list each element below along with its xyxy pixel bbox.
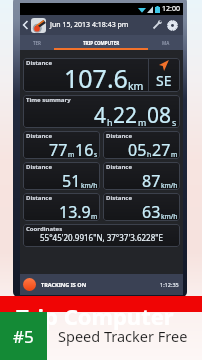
staticText: #5 [13,325,34,348]
staticText: s [172,117,177,128]
staticText: Distance [26,163,52,171]
staticText: 05 [128,139,147,159]
staticText: km/h [161,212,178,221]
button[interactable]: Time summary [23,95,180,128]
staticText: s [94,150,98,159]
staticText: Distance [26,194,52,202]
staticText: Distance [26,132,52,140]
staticText: m [138,117,147,128]
staticText: h [107,117,113,128]
staticText: 22 [113,101,138,128]
staticText: 63 [142,201,161,221]
button[interactable]: Speed Tracker Free [58,312,202,360]
staticText: 13.9 [59,201,91,221]
button[interactable]: Distance [103,193,180,221]
button[interactable]: TER [20,35,54,50]
staticText: 27 [152,139,171,159]
button[interactable]: Settings [164,15,180,35]
staticText: 51 [62,170,81,190]
staticText: 107.6 [64,61,128,92]
button[interactable]: Distance [23,162,100,190]
button[interactable]: Tools [150,15,164,35]
button[interactable]: Distance [23,58,180,92]
button[interactable]: Coordinates [23,224,180,247]
staticText: Distance [26,59,52,67]
staticText: Speed Tracker Free [58,326,188,346]
staticText: Distance [106,163,132,171]
staticText: MA [162,40,170,46]
staticText: m [171,150,178,159]
staticText: 08 [147,101,172,128]
button[interactable]: TRIP COMPUTER [54,35,148,50]
staticText: Coordinates [26,225,63,233]
staticText: m [91,212,98,221]
staticText: 1:12:35 [160,281,179,288]
button[interactable]: Stop tracking [23,278,36,291]
staticText: 12:00 [162,4,180,14]
staticText: TRIP COMPUTER [83,40,120,46]
staticText: km [128,79,144,92]
staticText: 16 [75,139,94,159]
staticText: 55°45'20.9916"N, 37°37'3.6228"E [40,232,163,243]
button[interactable]: Distance [103,131,180,159]
staticText: m [68,150,75,159]
staticText: h [147,150,152,159]
staticText: 77 [49,139,68,159]
staticText: Trip Computer [16,301,174,331]
staticText: Distance [106,132,132,140]
staticText: 87 [142,170,161,190]
staticText: TRACKING IS ON [41,281,87,288]
button[interactable]: MA [148,35,183,50]
staticText: km/h [161,181,178,190]
staticText: TER [33,40,42,46]
staticText: 4 [94,101,107,128]
button[interactable]: Distance [103,162,180,190]
button[interactable]: Distance [23,131,100,159]
button[interactable]: Navigate up [20,15,31,35]
button[interactable]: #5 [0,312,47,360]
staticText: SE [156,71,172,90]
button[interactable]: Distance [23,193,100,221]
staticText: Time summary [26,96,71,104]
staticText: Jun 15, 2013 4:18:43 pm [50,20,129,30]
staticText: km/h [81,181,98,190]
staticText: Distance [106,194,132,202]
